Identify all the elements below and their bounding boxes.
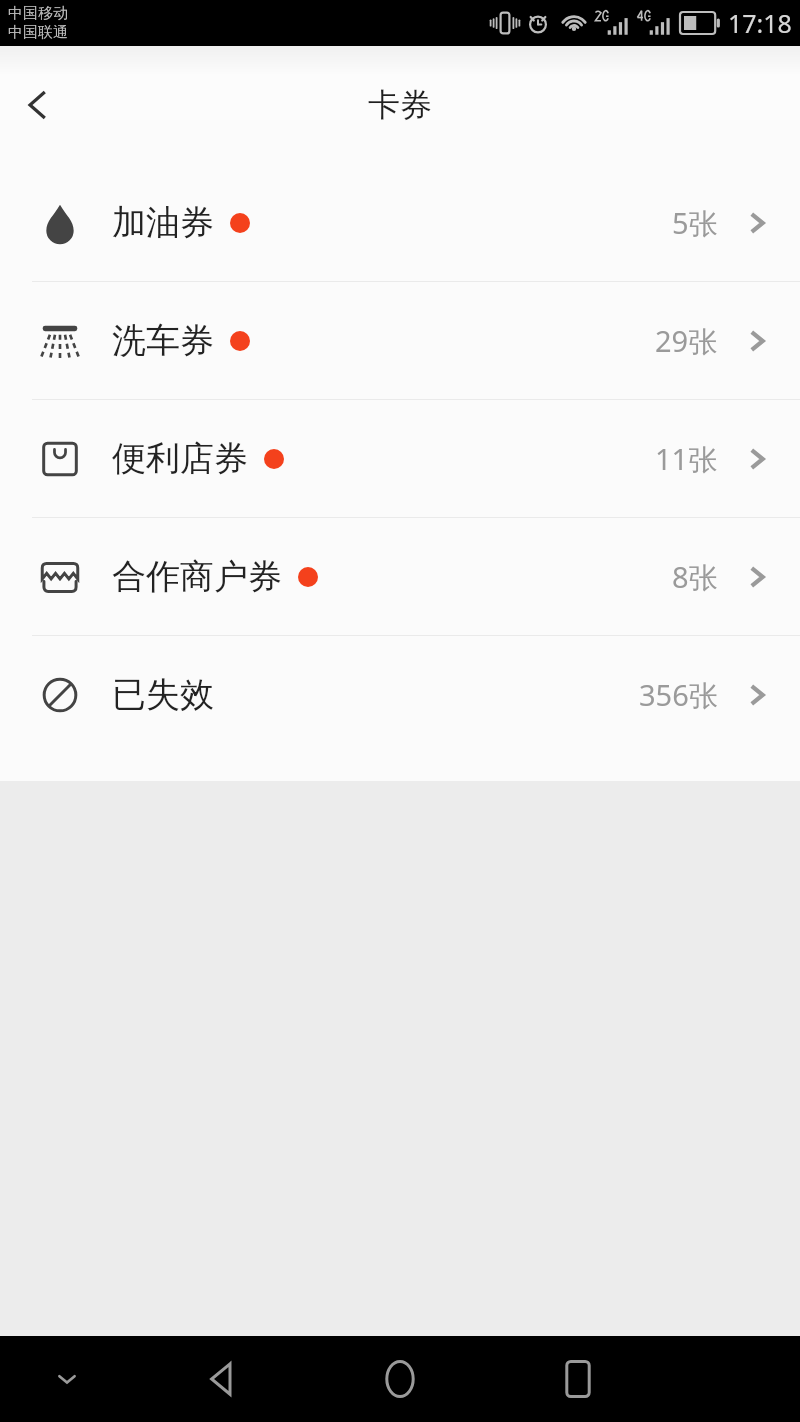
button[interactable]: Recent apps: [530, 1336, 626, 1422]
staticText: 中国移动: [8, 4, 68, 23]
staticText: 29张: [655, 321, 718, 361]
button[interactable]: Back: [6, 73, 70, 137]
staticText: 已失效: [112, 673, 214, 716]
button[interactable]: 便利店券: [0, 400, 800, 517]
button[interactable]: 合作商户券: [0, 518, 800, 635]
button[interactable]: 已失效: [0, 636, 800, 753]
staticText: 356张: [639, 675, 718, 715]
staticText: 17:18: [728, 6, 792, 40]
staticText: 8张: [672, 557, 718, 597]
staticText: 加油券: [112, 201, 214, 244]
staticText: 合作商户券: [112, 555, 282, 598]
staticText: 便利店券: [112, 437, 248, 480]
staticText: 中国联通: [8, 23, 68, 42]
button[interactable]: Home: [352, 1336, 448, 1422]
button[interactable]: 加油券: [0, 164, 800, 281]
staticText: 洗车券: [112, 319, 214, 362]
staticText: 11张: [655, 439, 718, 479]
button[interactable]: Hide navigation bar: [28, 1340, 106, 1418]
button[interactable]: Back: [174, 1336, 270, 1422]
staticText: 卡券: [368, 85, 432, 125]
button[interactable]: 洗车券: [0, 282, 800, 399]
staticText: 5张: [672, 203, 718, 243]
